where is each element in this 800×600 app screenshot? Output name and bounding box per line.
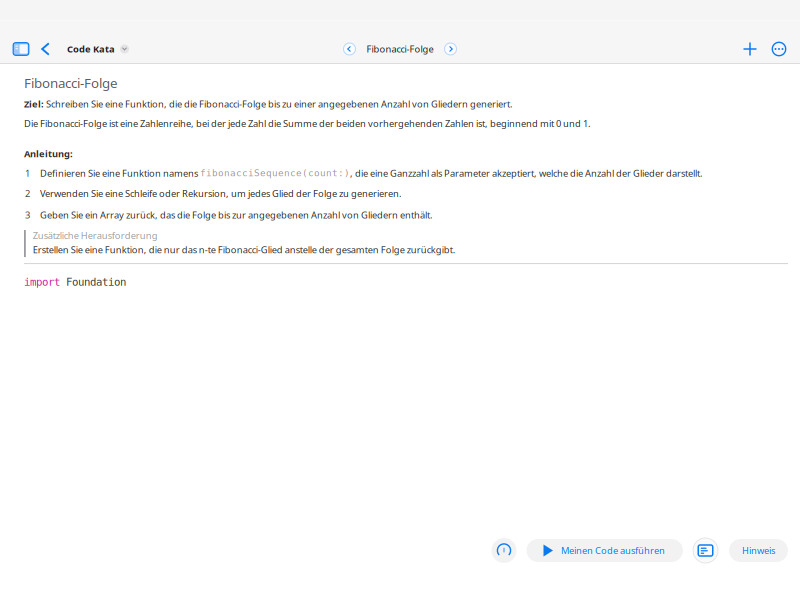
staticText: Definieren Sie eine Funktion namens <box>40 167 200 179</box>
button[interactable]: Meinen Code ausführen <box>526 539 683 562</box>
button[interactable]: Toggle Sidebar <box>7 35 35 63</box>
staticText: Code Kata <box>67 43 115 55</box>
button[interactable]: Back <box>35 35 56 63</box>
staticText: Meinen Code ausführen <box>561 544 665 557</box>
button[interactable]: More options <box>766 35 792 63</box>
staticText: Erstellen Sie eine Funktion, die nur das… <box>33 243 456 256</box>
staticText: 3 <box>25 209 30 221</box>
staticText: Verwenden Sie eine Schleife oder Rekursi… <box>40 187 402 200</box>
button[interactable]: Add <box>737 35 763 63</box>
staticText: Zusätzliche Herausforderung <box>33 229 158 241</box>
staticText: fibonacciSequence(count:) <box>200 168 350 178</box>
button[interactable]: Code Kata <box>56 35 135 63</box>
staticText: import <box>24 276 60 288</box>
button[interactable]: Execution speed <box>491 538 516 563</box>
button[interactable]: Show console <box>693 538 718 563</box>
staticText: Hinweis <box>742 544 775 557</box>
staticText: Schreiben Sie eine Funktion, die die Fib… <box>44 98 513 110</box>
staticText: Fibonacci-Folge <box>24 74 118 92</box>
staticText: Die Fibonacci-Folge ist eine Zahlenreihe… <box>24 117 591 129</box>
staticText: 2 <box>25 187 30 200</box>
button[interactable]: Hinweis <box>729 539 788 562</box>
staticText: Anleitung: <box>24 147 73 160</box>
staticText: Fibonacci-Folge <box>366 43 433 55</box>
button[interactable]: Previous page <box>340 40 358 58</box>
button[interactable]: Next page <box>441 40 459 58</box>
staticText: Foundation <box>60 276 126 288</box>
staticText: 1 <box>25 167 30 179</box>
staticText: , die eine Ganzzahl als Parameter akzept… <box>350 167 703 179</box>
staticText: Ziel: <box>24 98 44 110</box>
staticText: Geben Sie ein Array zurück, das die Folg… <box>40 209 433 221</box>
